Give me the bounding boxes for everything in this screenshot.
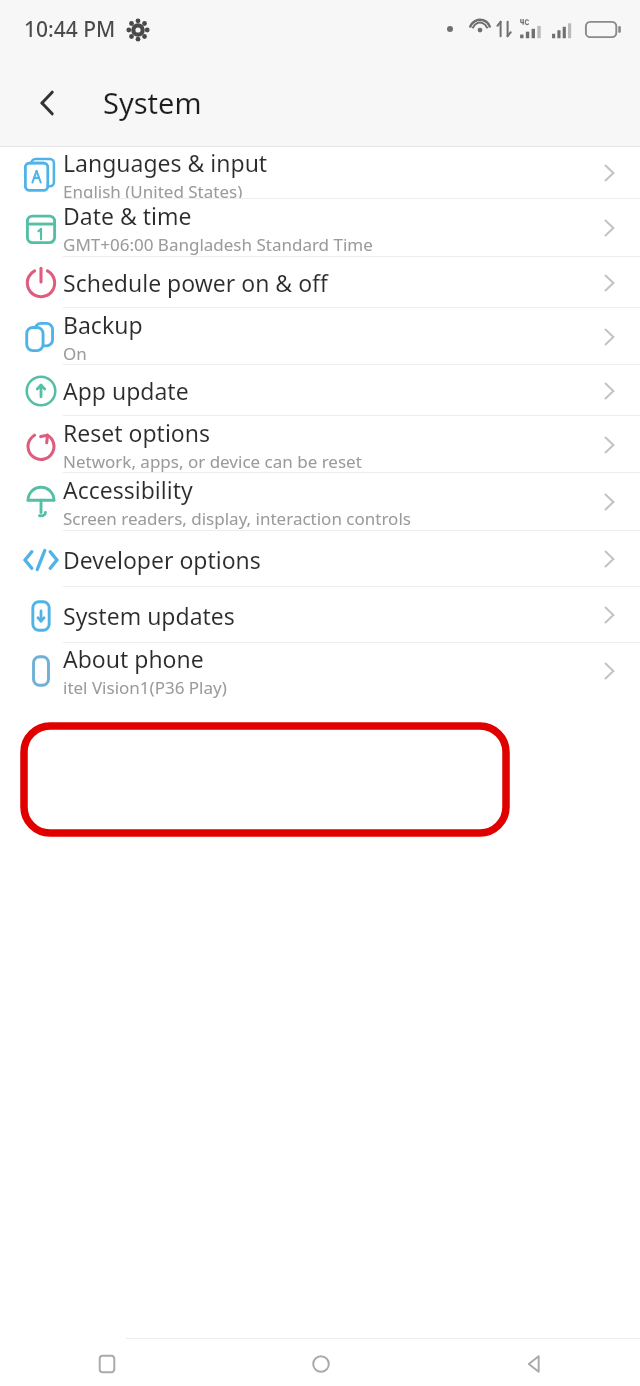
staticText: Screen readers, display, interaction con… — [63, 507, 411, 530]
staticText: GMT+06:00 Bangladesh Standard Time — [63, 233, 373, 256]
button[interactable]: Languages & input — [0, 147, 640, 199]
staticText: Accessibility — [63, 474, 193, 505]
staticText: 10:44 PM — [24, 15, 116, 44]
staticText: About phone — [63, 643, 204, 674]
staticText: System — [103, 83, 202, 122]
button[interactable]: Backup — [0, 308, 640, 365]
staticText: On — [63, 342, 87, 365]
staticText: Backup — [63, 309, 143, 340]
button[interactable]: System updates — [0, 587, 640, 643]
staticText: System updates — [63, 600, 235, 631]
staticText: Network, apps, or device can be reset — [63, 450, 362, 473]
staticText: English (United States) — [63, 180, 243, 199]
button[interactable]: Recents — [0, 1342, 214, 1386]
staticText: App update — [63, 375, 189, 406]
button[interactable]: Accessibility — [0, 473, 640, 531]
staticText: Languages & input — [63, 147, 268, 178]
staticText: Date & time — [63, 200, 192, 231]
staticText: Schedule power on & off — [63, 267, 328, 298]
button[interactable]: Reset options — [0, 416, 640, 473]
button[interactable]: Schedule power on & off — [0, 257, 640, 308]
button[interactable]: Date & time — [0, 199, 640, 257]
staticText: Reset options — [63, 417, 210, 448]
button[interactable]: About phone — [0, 643, 640, 698]
button[interactable]: Back — [22, 77, 74, 129]
button[interactable]: Home — [214, 1342, 427, 1386]
button[interactable]: Back — [427, 1342, 640, 1386]
staticText: itel Vision1(P36 Play) — [63, 676, 227, 698]
button[interactable]: Developer options — [0, 531, 640, 587]
staticText: Developer options — [63, 544, 261, 575]
button[interactable]: App update — [0, 365, 640, 416]
